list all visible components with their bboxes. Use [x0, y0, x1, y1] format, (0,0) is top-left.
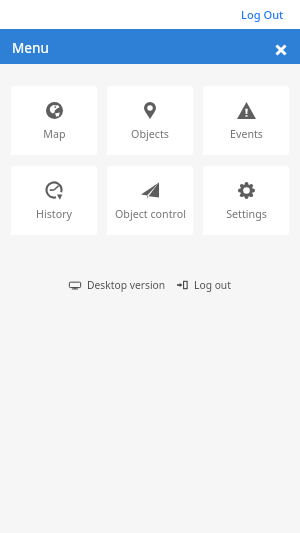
staticText: Objects: [131, 127, 169, 142]
staticText: Map: [43, 127, 66, 142]
button[interactable]: Map: [11, 86, 97, 155]
button[interactable]: Desktop version: [66, 274, 169, 296]
button[interactable]: Log Out: [229, 2, 300, 27]
staticText: Settings: [226, 207, 267, 222]
staticText: Object control: [115, 207, 186, 222]
button[interactable]: Objects: [107, 86, 193, 155]
button[interactable]: Settings: [203, 166, 289, 235]
staticText: Events: [230, 127, 263, 142]
button[interactable]: Object control: [107, 166, 193, 235]
staticText: Log out: [194, 278, 231, 292]
staticText: History: [36, 207, 72, 222]
button[interactable]: Log out: [174, 274, 234, 296]
staticText: Log Out: [241, 7, 284, 22]
staticText: Desktop version: [87, 278, 166, 292]
button[interactable]: History: [11, 166, 97, 235]
button[interactable]: Close menu: [268, 34, 294, 60]
button[interactable]: Events: [203, 86, 289, 155]
staticText: Menu: [12, 38, 49, 57]
